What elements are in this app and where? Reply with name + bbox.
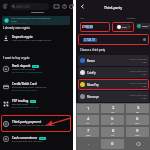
staticText: Credit/Debit Card [12, 82, 37, 86]
staticText: ABC [111, 111, 115, 113]
staticText: Deposit local currencies [12, 68, 36, 71]
staticText: JKL [111, 122, 114, 124]
staticText: Banxa [87, 59, 95, 63]
staticText: WXYZ [135, 134, 140, 136]
staticText: 0.5% [142, 97, 147, 100]
button[interactable]: EUR [117, 25, 130, 29]
staticText: 1 EUR ≈ 0.92 USDT [129, 94, 147, 97]
staticText: Buy crypto in one minute [12, 89, 37, 92]
staticText: Deposit crypto [12, 35, 33, 39]
button[interactable]: Cash convenience [1, 131, 71, 147]
staticText: 1 EUR ≈ 0.92 USDT [129, 82, 147, 85]
button[interactable]: Mercuryo [78, 91, 149, 102]
staticText: 50.00 [86, 25, 93, 29]
staticText: 1 EUR ≈ 0.92 USDT [129, 58, 147, 61]
staticText: Pay [80, 17, 84, 20]
staticText: 5 [111, 116, 114, 122]
staticText: 2 9 [82, 25, 86, 29]
staticText: Receive [127, 17, 136, 20]
staticText: 2 728.15 [84, 38, 96, 42]
staticText: I already own crypto [3, 26, 30, 30]
staticText: 0.5% [142, 73, 147, 76]
staticText: Buy crypto via 800 local fiat [12, 106, 39, 109]
staticText: New [40, 137, 45, 140]
staticText: 0 [111, 141, 114, 147]
staticText: SAND/USDT [16, 5, 31, 9]
staticText: 4 [87, 116, 90, 122]
button[interactable]: Your crypto deposits are guaranteed by B… [4, 16, 70, 25]
staticText: 0.5% [142, 61, 147, 64]
staticText: Zero fee trading [12, 103, 28, 106]
button[interactable]: EUR [112, 22, 134, 32]
staticText: Bank deposit [12, 64, 31, 68]
staticText: Buy crypto with your local cash [12, 140, 43, 143]
button[interactable]: 7 [77, 127, 99, 137]
button[interactable]: Banxa [78, 55, 149, 66]
button[interactable]: 6 [126, 115, 149, 125]
staticText: 8 [112, 128, 115, 134]
button[interactable]: Third-party payment [1, 115, 71, 132]
staticText: Trade securely with our third-party part… [12, 124, 55, 127]
button[interactable]: Coinify [78, 67, 149, 78]
button[interactable]: 4 [77, 115, 99, 125]
button[interactable]: 8 [101, 127, 124, 137]
staticText: TUV [111, 134, 115, 136]
button[interactable]: 0 [101, 139, 124, 149]
staticText: Hot [31, 100, 35, 103]
staticText: DEF [136, 111, 140, 113]
staticText: EUR [122, 26, 127, 29]
staticText: . [88, 142, 89, 146]
button[interactable]: History [61, 3, 67, 9]
staticText: PQRS [86, 134, 91, 136]
button[interactable]: Profile [2, 3, 8, 9]
staticText: Add crypto funds to your Bitget account [12, 39, 52, 42]
button[interactable]: 2 [101, 104, 124, 113]
staticText: Cash convenience [12, 136, 38, 140]
staticText: 6 [136, 116, 139, 122]
staticText: P2P trading [12, 99, 29, 103]
button[interactable]: 1 [77, 104, 99, 113]
button[interactable]: 5 [101, 115, 124, 125]
staticText: MoonPay [87, 83, 99, 87]
staticText: Coinify [87, 71, 96, 75]
staticText: I want to buy crypto [3, 56, 30, 60]
button[interactable]: Notifications [68, 3, 74, 9]
button[interactable]: P2P trading [1, 96, 71, 112]
staticText: 3 [137, 105, 140, 111]
staticText: Protection Fund [11, 22, 26, 25]
button[interactable]: Back [79, 3, 86, 10]
staticText: MNO [135, 122, 140, 124]
staticText: 9 [136, 128, 139, 134]
staticText: GHI [86, 122, 90, 124]
button[interactable]: Scan [53, 3, 59, 9]
staticText: 1 [87, 106, 90, 112]
button[interactable]: SAND/USDT [12, 3, 49, 10]
staticText: 2 [112, 105, 115, 111]
staticText: Third-party [76, 5, 150, 9]
button[interactable]: 9 [126, 127, 149, 137]
button[interactable]: Deposit crypto [1, 30, 71, 46]
button[interactable]: 3 [126, 104, 149, 113]
button[interactable]: 2 9 [80, 22, 110, 32]
button[interactable]: 2 728.15 [78, 34, 149, 45]
staticText: Buy crypto with Visa or Mastercard [12, 86, 47, 89]
staticText: Buy crypto at a advanced price [12, 71, 43, 74]
button[interactable]: USDT [137, 24, 150, 28]
button[interactable]: Credit/Debit Card [1, 79, 71, 95]
button[interactable]: Bank deposit [1, 61, 71, 77]
staticText: Choose a third party [80, 48, 106, 52]
staticText: 1 EUR ≈ 0.92 USDT [129, 70, 147, 73]
button[interactable]: Backspace [126, 139, 149, 149]
button[interactable]: MoonPay [78, 79, 149, 90]
staticText: Third-party payment [12, 120, 42, 124]
staticText: Mercuryo [87, 95, 99, 99]
staticText: 7 [87, 128, 90, 134]
staticText: New [33, 65, 38, 68]
staticText: Your crypto deposits are guaranteed by B… [11, 17, 57, 22]
staticText: 0.5% [142, 85, 147, 88]
staticText: USDT [142, 25, 148, 28]
